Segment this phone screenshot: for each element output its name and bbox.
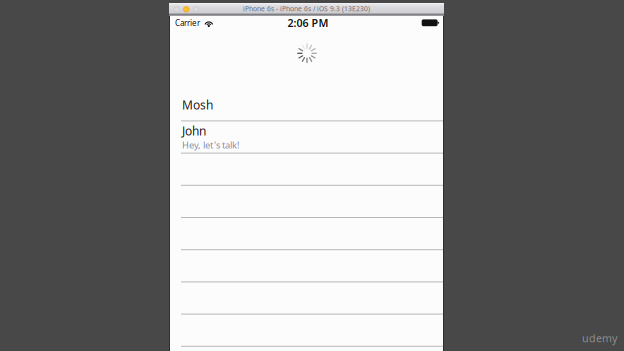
button[interactable] xyxy=(170,186,443,218)
button[interactable]: Mosh xyxy=(170,89,443,121)
button[interactable]: Close window xyxy=(173,6,180,12)
staticText: Mosh xyxy=(182,97,213,113)
button[interactable] xyxy=(170,282,443,315)
button[interactable] xyxy=(170,218,443,250)
staticText: udemy xyxy=(582,331,617,345)
staticText: Hey, let's talk! xyxy=(182,139,240,151)
staticText: iPhone 6s - iPhone 6s / iOS 9.3 (13E230) xyxy=(243,4,370,13)
button[interactable]: John xyxy=(170,121,443,154)
button[interactable] xyxy=(170,250,443,282)
button[interactable] xyxy=(170,315,443,347)
button[interactable]: Minimize window xyxy=(183,6,189,12)
staticText: Carrier xyxy=(175,17,200,28)
button[interactable] xyxy=(170,154,443,186)
staticText: 2:06 PM xyxy=(287,16,328,30)
staticText: John xyxy=(182,123,206,139)
button[interactable]: Zoom window xyxy=(193,6,199,12)
